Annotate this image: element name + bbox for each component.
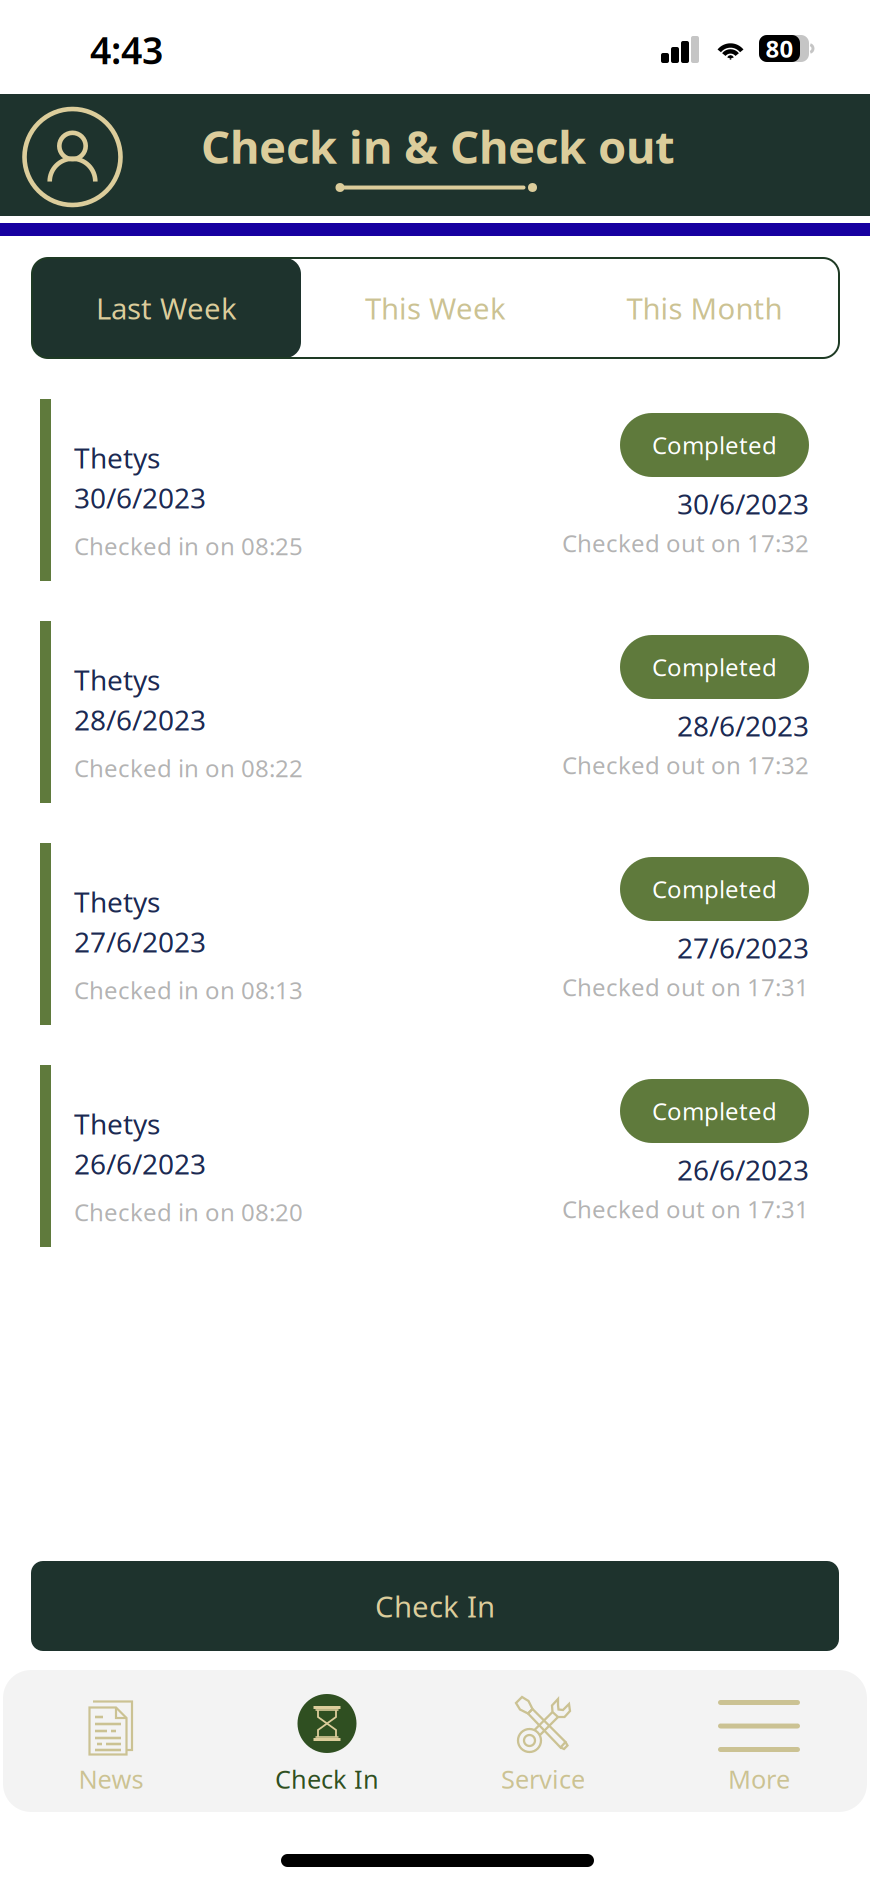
staticText: More: [728, 1762, 790, 1796]
staticText: Last Week: [96, 288, 237, 327]
staticText: Checked in on 08:25: [74, 530, 303, 562]
button[interactable]: News: [3, 1670, 219, 1812]
staticText: 26/6/2023: [677, 1151, 809, 1188]
button[interactable]: Check In: [31, 1561, 839, 1651]
button[interactable]: Check In: [219, 1670, 435, 1812]
staticText: 28/6/2023: [74, 701, 206, 738]
staticText: Completed: [652, 873, 777, 905]
staticText: 26/6/2023: [74, 1145, 206, 1182]
staticText: Checked out on 17:32: [562, 527, 809, 559]
staticText: Checked out on 17:31: [562, 971, 809, 1003]
button[interactable]: Profile: [22, 96, 147, 218]
staticText: 4:43: [90, 25, 163, 75]
staticText: Thetys: [74, 883, 160, 920]
button[interactable]: This Month: [570, 258, 839, 358]
staticText: Check in & Check out: [201, 116, 675, 176]
staticText: Check In: [275, 1762, 379, 1796]
staticText: Thetys: [74, 439, 160, 476]
staticText: Checked in on 08:20: [74, 1196, 303, 1228]
staticText: 28/6/2023: [677, 707, 809, 744]
staticText: Check In: [375, 1586, 495, 1625]
staticText: 30/6/2023: [677, 485, 809, 522]
staticText: 30/6/2023: [74, 479, 206, 516]
staticText: Checked in on 08:22: [74, 752, 303, 784]
staticText: News: [78, 1762, 143, 1796]
staticText: 80: [765, 33, 793, 64]
staticText: This Week: [365, 288, 506, 327]
staticText: This Month: [626, 288, 782, 327]
staticText: Service: [501, 1762, 585, 1796]
button[interactable]: This Week: [301, 258, 570, 358]
button[interactable]: More: [651, 1670, 867, 1812]
button[interactable]: Last Week: [32, 258, 301, 358]
staticText: Completed: [652, 651, 777, 683]
staticText: Thetys: [74, 661, 160, 698]
staticText: Checked out on 17:32: [562, 749, 809, 781]
staticText: 27/6/2023: [74, 923, 206, 960]
staticText: Checked in on 08:13: [74, 974, 303, 1006]
button[interactable]: Service: [435, 1670, 651, 1812]
staticText: Checked out on 17:31: [562, 1193, 809, 1225]
staticText: 27/6/2023: [677, 929, 809, 966]
staticText: Thetys: [74, 1105, 160, 1142]
staticText: Completed: [652, 429, 777, 461]
staticText: Completed: [652, 1095, 777, 1127]
